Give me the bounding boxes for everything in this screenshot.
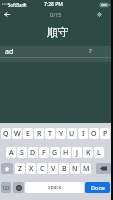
button[interactable]: Done — [85, 182, 110, 193]
staticText: N — [72, 164, 78, 174]
staticText: 順守 — [47, 25, 69, 39]
button[interactable]: K — [83, 147, 93, 158]
button[interactable]: ad — [0, 46, 113, 62]
button[interactable]: H — [61, 147, 71, 158]
staticText: Z — [18, 164, 23, 174]
button[interactable]: U — [67, 128, 77, 139]
staticText: G — [52, 148, 58, 158]
button[interactable]: Q — [1, 128, 11, 139]
staticText: B — [62, 164, 67, 174]
button[interactable]: W — [12, 128, 22, 139]
staticText: F — [42, 148, 46, 158]
staticText: V — [51, 164, 56, 174]
staticText: H — [63, 148, 69, 158]
button[interactable]: 123 — [1, 182, 11, 193]
staticText: ? — [89, 47, 92, 55]
staticText: M — [83, 164, 90, 174]
staticText: C — [40, 164, 45, 174]
staticText: W — [14, 129, 21, 139]
button[interactable]: G — [50, 147, 60, 158]
button[interactable]: Backspace — [96, 163, 111, 174]
button[interactable]: E — [23, 128, 33, 139]
button[interactable]: T — [45, 128, 55, 139]
staticText: O — [91, 129, 97, 139]
staticText: U — [69, 129, 75, 139]
button[interactable]: A — [6, 147, 16, 158]
staticText: 7:28 PM — [44, 1, 63, 8]
button[interactable]: N — [70, 163, 80, 174]
button[interactable]: O — [89, 128, 99, 139]
button[interactable]: R — [34, 128, 44, 139]
staticText: Done — [91, 184, 105, 191]
button[interactable]: Shift — [1, 163, 13, 174]
staticText: 123 — [2, 185, 10, 191]
staticText: X — [29, 164, 34, 174]
button[interactable]: D — [28, 147, 38, 158]
button[interactable]: Next keyboard — [13, 182, 24, 193]
button[interactable]: M — [81, 163, 91, 174]
button[interactable]: J — [72, 147, 82, 158]
staticText: L — [97, 148, 101, 158]
button[interactable]: Y — [56, 128, 66, 139]
staticText: T — [48, 129, 52, 139]
staticText: I — [82, 129, 85, 139]
staticText: Q — [3, 129, 9, 139]
staticText: Y — [59, 129, 64, 139]
button[interactable]: V — [48, 163, 58, 174]
staticText: J — [76, 148, 79, 158]
staticText: S — [20, 148, 24, 158]
button[interactable]: C — [37, 163, 47, 174]
staticText: K — [86, 148, 91, 158]
staticText: R — [37, 129, 42, 139]
button[interactable]: Settings — [92, 10, 107, 19]
staticText: 0/15 — [50, 11, 62, 18]
staticText: space — [48, 184, 62, 191]
staticText: SoftBank — [8, 2, 27, 8]
staticText: D — [30, 148, 36, 158]
button[interactable]: Z — [15, 163, 25, 174]
button[interactable]: space — [25, 182, 84, 193]
button[interactable]: S — [17, 147, 27, 158]
button[interactable]: I — [78, 128, 88, 139]
button[interactable]: Back — [0, 10, 14, 19]
button[interactable]: X — [26, 163, 36, 174]
staticText: A — [9, 148, 14, 158]
staticText: P — [103, 129, 108, 139]
button[interactable]: B — [59, 163, 69, 174]
staticText: ad — [5, 47, 14, 57]
button[interactable]: P — [100, 128, 110, 139]
staticText: E — [26, 129, 30, 139]
button[interactable]: L — [94, 147, 104, 158]
button[interactable]: F — [39, 147, 49, 158]
